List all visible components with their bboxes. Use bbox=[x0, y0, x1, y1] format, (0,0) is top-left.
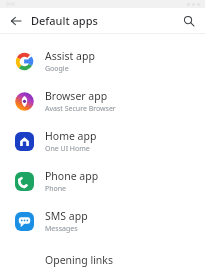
staticText: Browser app bbox=[45, 89, 108, 103]
staticText: 9:41 bbox=[6, 1, 16, 8]
button[interactable]: SMS app bbox=[0, 201, 205, 241]
button[interactable]: Assist app bbox=[0, 41, 205, 81]
staticText: Google bbox=[45, 64, 69, 74]
staticText: Assist app bbox=[45, 49, 95, 63]
staticText: Opening links bbox=[45, 253, 113, 267]
staticText: Home app bbox=[45, 129, 97, 143]
staticText: Avast Secure Browser bbox=[45, 104, 116, 114]
staticText: SMS app bbox=[45, 209, 88, 223]
staticText: Phone app bbox=[45, 169, 99, 183]
button[interactable]: Opening links bbox=[0, 241, 205, 279]
staticText: Messages bbox=[45, 224, 78, 234]
button[interactable]: Browser app bbox=[0, 81, 205, 121]
button[interactable]: Phone app bbox=[0, 161, 205, 201]
button[interactable]: Back bbox=[7, 12, 25, 30]
button[interactable]: Home app bbox=[0, 121, 205, 161]
button[interactable]: Search bbox=[180, 12, 198, 30]
staticText: Phone bbox=[45, 184, 67, 194]
staticText: Default apps bbox=[31, 13, 98, 28]
staticText: One UI Home bbox=[45, 144, 90, 154]
